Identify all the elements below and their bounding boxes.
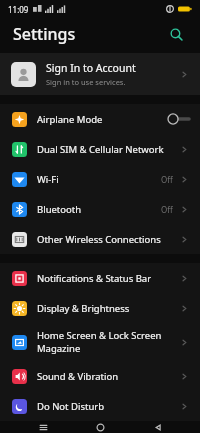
button[interactable]: Notifications & Status Bar — [0, 263, 200, 293]
staticText: Other Wireless Connections — [37, 233, 161, 246]
staticText: Sign In to Account — [46, 61, 136, 75]
button[interactable]: Wi-Fi — [0, 164, 200, 194]
staticText: Settings — [13, 23, 76, 45]
button[interactable]: Bluetooth — [0, 194, 200, 224]
staticText: Bluetooth — [37, 203, 82, 216]
button[interactable]: Airplane Mode — [0, 104, 200, 134]
button[interactable]: Sound & Vibration — [0, 361, 200, 391]
button[interactable]: Dual SIM & Cellular Network — [0, 134, 200, 164]
button[interactable]: Back — [143, 421, 173, 433]
staticText: Do Not Disturb — [37, 400, 105, 413]
staticText: Notifications & Status Bar — [37, 272, 152, 285]
button[interactable]: Sign In to Account — [0, 53, 200, 95]
button[interactable]: Do Not Disturb — [0, 391, 200, 421]
staticText: Sound & Vibration — [37, 370, 118, 383]
staticText: 11:09 — [8, 4, 29, 15]
button[interactable]: Home Screen & Lock Screen Magazine — [0, 323, 200, 361]
staticText: Airplane Mode — [37, 113, 103, 126]
button[interactable]: Search — [165, 23, 187, 45]
button[interactable]: Other Wireless Connections — [0, 224, 200, 254]
staticText: Off — [161, 174, 173, 185]
staticText: Display & Brightness — [37, 302, 130, 315]
button[interactable]: Display & Brightness — [0, 293, 200, 323]
staticText: Sign in to use services. — [46, 77, 126, 87]
staticText: Home Screen & Lock Screen Magazine — [37, 329, 162, 355]
button[interactable]: Home — [85, 421, 115, 433]
staticText: Wi-Fi — [37, 173, 59, 186]
staticText: Off — [161, 204, 173, 215]
button[interactable]: Recent apps — [28, 421, 58, 433]
staticText: Dual SIM & Cellular Network — [37, 143, 164, 156]
